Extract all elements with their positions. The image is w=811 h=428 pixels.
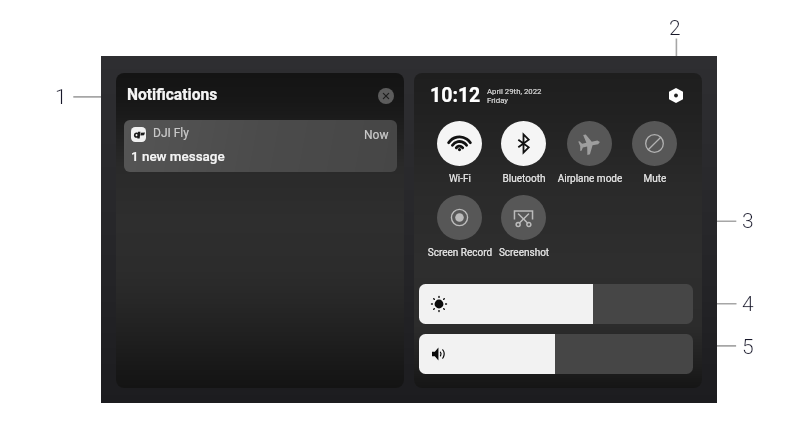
button[interactable]: Volume	[419, 334, 693, 374]
staticText: Friday	[487, 96, 509, 105]
staticText: Screen Record	[418, 247, 502, 259]
staticText: April 29th, 2022	[487, 87, 542, 96]
staticText: Mute	[613, 173, 697, 185]
staticText: 1 new message	[131, 149, 225, 165]
staticText: 2	[669, 16, 681, 41]
button[interactable]: DJI Fly	[124, 120, 397, 172]
staticText: Wi-Fi	[418, 173, 502, 185]
button[interactable]: Brightness	[419, 284, 693, 324]
staticText: Notifications	[127, 86, 218, 104]
button[interactable]: Airplane mode	[548, 119, 632, 188]
staticText: Bluetooth	[482, 173, 566, 185]
staticText: Screenshot	[482, 247, 566, 259]
staticText: Now	[364, 128, 389, 142]
button[interactable]: Close notifications	[378, 88, 394, 104]
button[interactable]: Wi-Fi	[418, 119, 502, 188]
staticText: 5	[742, 335, 754, 360]
button[interactable]: Mute	[613, 119, 697, 188]
button[interactable]: Settings	[669, 88, 683, 103]
staticText: 1	[55, 85, 67, 110]
button[interactable]: Screen Record	[418, 193, 502, 262]
button[interactable]: Bluetooth	[482, 119, 566, 188]
staticText: 3	[742, 209, 754, 234]
staticText: 10:12	[430, 84, 481, 107]
staticText: 4	[742, 292, 754, 317]
staticText: DJI Fly	[153, 126, 189, 140]
staticText: Airplane mode	[548, 173, 632, 185]
button[interactable]: Screenshot	[482, 193, 566, 262]
